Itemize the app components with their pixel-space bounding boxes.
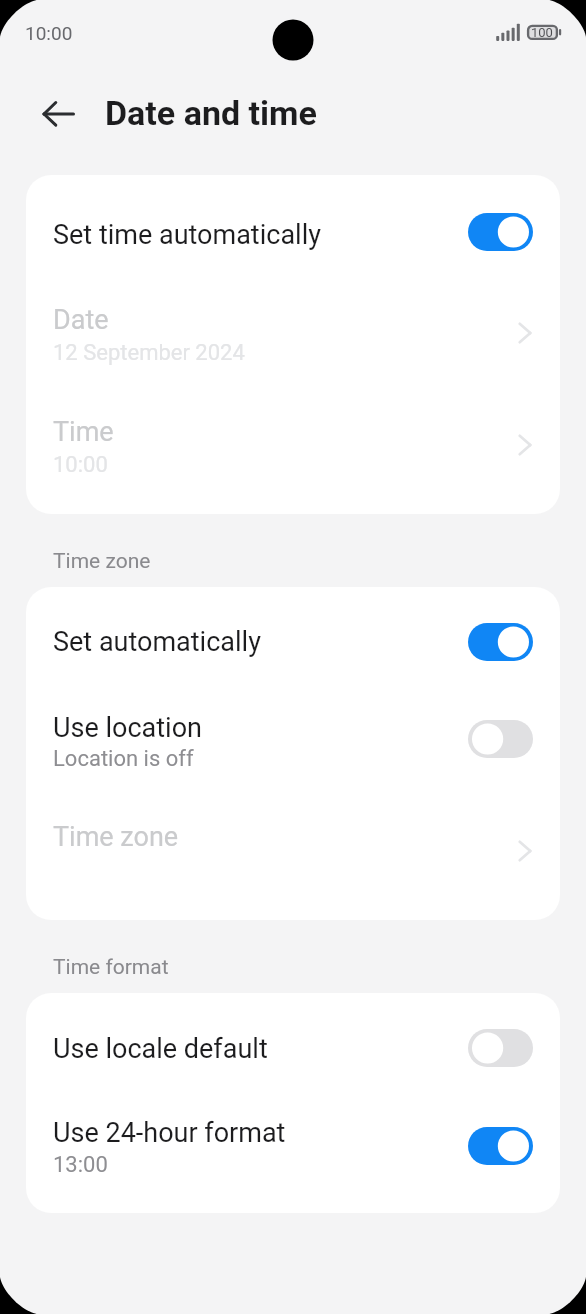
button[interactable]: Use location — [468, 720, 533, 758]
button[interactable]: Set automatically — [468, 623, 533, 661]
button[interactable]: Date — [503, 311, 547, 355]
button[interactable]: Time zone — [503, 829, 547, 873]
button[interactable] — [26, 800, 560, 920]
staticText: Time format — [53, 955, 169, 980]
staticText: 13:00 — [53, 1152, 108, 1178]
staticText: 10:00 — [53, 452, 108, 478]
staticText: Time zone — [53, 549, 151, 574]
staticText: Use location — [53, 712, 202, 744]
staticText: Use 24-hour format — [53, 1117, 286, 1149]
button[interactable]: Time — [503, 423, 547, 467]
staticText: 100 — [531, 25, 553, 40]
staticText: Set automatically — [53, 626, 261, 658]
staticText: 12 September 2024 — [53, 340, 245, 366]
staticText: Date and time — [105, 93, 317, 133]
button[interactable] — [26, 293, 560, 404]
staticText: Time zone — [53, 821, 179, 853]
button[interactable] — [26, 175, 560, 293]
button[interactable]: Back — [30, 92, 74, 136]
button[interactable]: Set time automatically — [468, 213, 533, 251]
staticText: Set time automatically — [53, 219, 321, 251]
staticText: Location is off — [53, 746, 194, 772]
button[interactable] — [26, 696, 560, 800]
button[interactable]: Use locale default — [468, 1029, 533, 1067]
button[interactable] — [26, 1100, 560, 1213]
button[interactable] — [26, 404, 560, 514]
staticText: Use locale default — [53, 1033, 268, 1065]
button[interactable] — [26, 587, 560, 696]
button[interactable] — [26, 993, 560, 1100]
staticText: 10:00 — [25, 22, 73, 44]
staticText: Date — [53, 304, 109, 336]
staticText: Time — [53, 416, 114, 448]
button[interactable]: Use 24-hour format — [468, 1127, 533, 1165]
